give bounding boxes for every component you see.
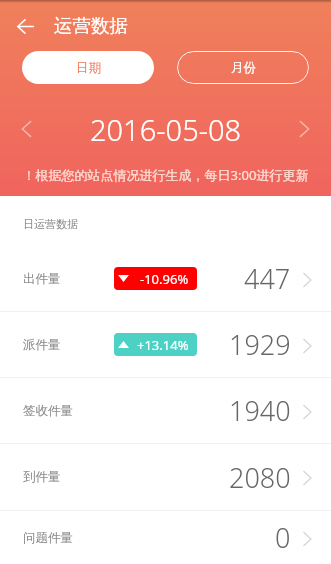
- other: Open 出件量 detail: [299, 272, 315, 288]
- staticText: 447: [244, 260, 291, 297]
- other: Open 问题件量 detail: [299, 531, 315, 547]
- button[interactable]: 月份: [177, 51, 309, 84]
- button[interactable]: 出件量: [0, 246, 331, 312]
- staticText: 到件量: [23, 469, 61, 485]
- other: Open 到件量 detail: [299, 470, 315, 486]
- staticText: ！根据您的站点情况进行生成，每日3:00进行更新: [0, 166, 331, 184]
- button[interactable]: 签收件量: [0, 378, 331, 444]
- staticText: 1929: [229, 326, 291, 363]
- button[interactable]: 问题件量: [0, 511, 331, 564]
- button[interactable]: Previous day: [6, 109, 46, 149]
- staticText: 日期: [76, 60, 101, 76]
- other: Open 派件量 detail: [299, 338, 315, 354]
- other: Open 签收件量 detail: [299, 404, 315, 420]
- button[interactable]: 派件量: [0, 312, 331, 378]
- staticText: 月份: [231, 60, 256, 76]
- staticText: 运营数据: [54, 14, 128, 37]
- staticText: 签收件量: [23, 403, 73, 419]
- button[interactable]: Next day: [285, 109, 325, 149]
- staticText: 2080: [229, 459, 291, 496]
- staticText: 日运营数据: [23, 217, 78, 231]
- button[interactable]: Back: [3, 4, 47, 48]
- button[interactable]: 到件量: [0, 444, 331, 511]
- button[interactable]: 日期: [22, 51, 154, 84]
- staticText: +13.14%: [137, 336, 189, 354]
- staticText: 出件量: [23, 271, 61, 287]
- staticText: 1940: [229, 392, 291, 429]
- staticText: 问题件量: [23, 530, 73, 546]
- staticText: 2016-05-08: [90, 110, 242, 149]
- staticText: 派件量: [23, 337, 61, 353]
- staticText: 0: [275, 519, 291, 556]
- staticText: -10.96%: [140, 270, 189, 288]
